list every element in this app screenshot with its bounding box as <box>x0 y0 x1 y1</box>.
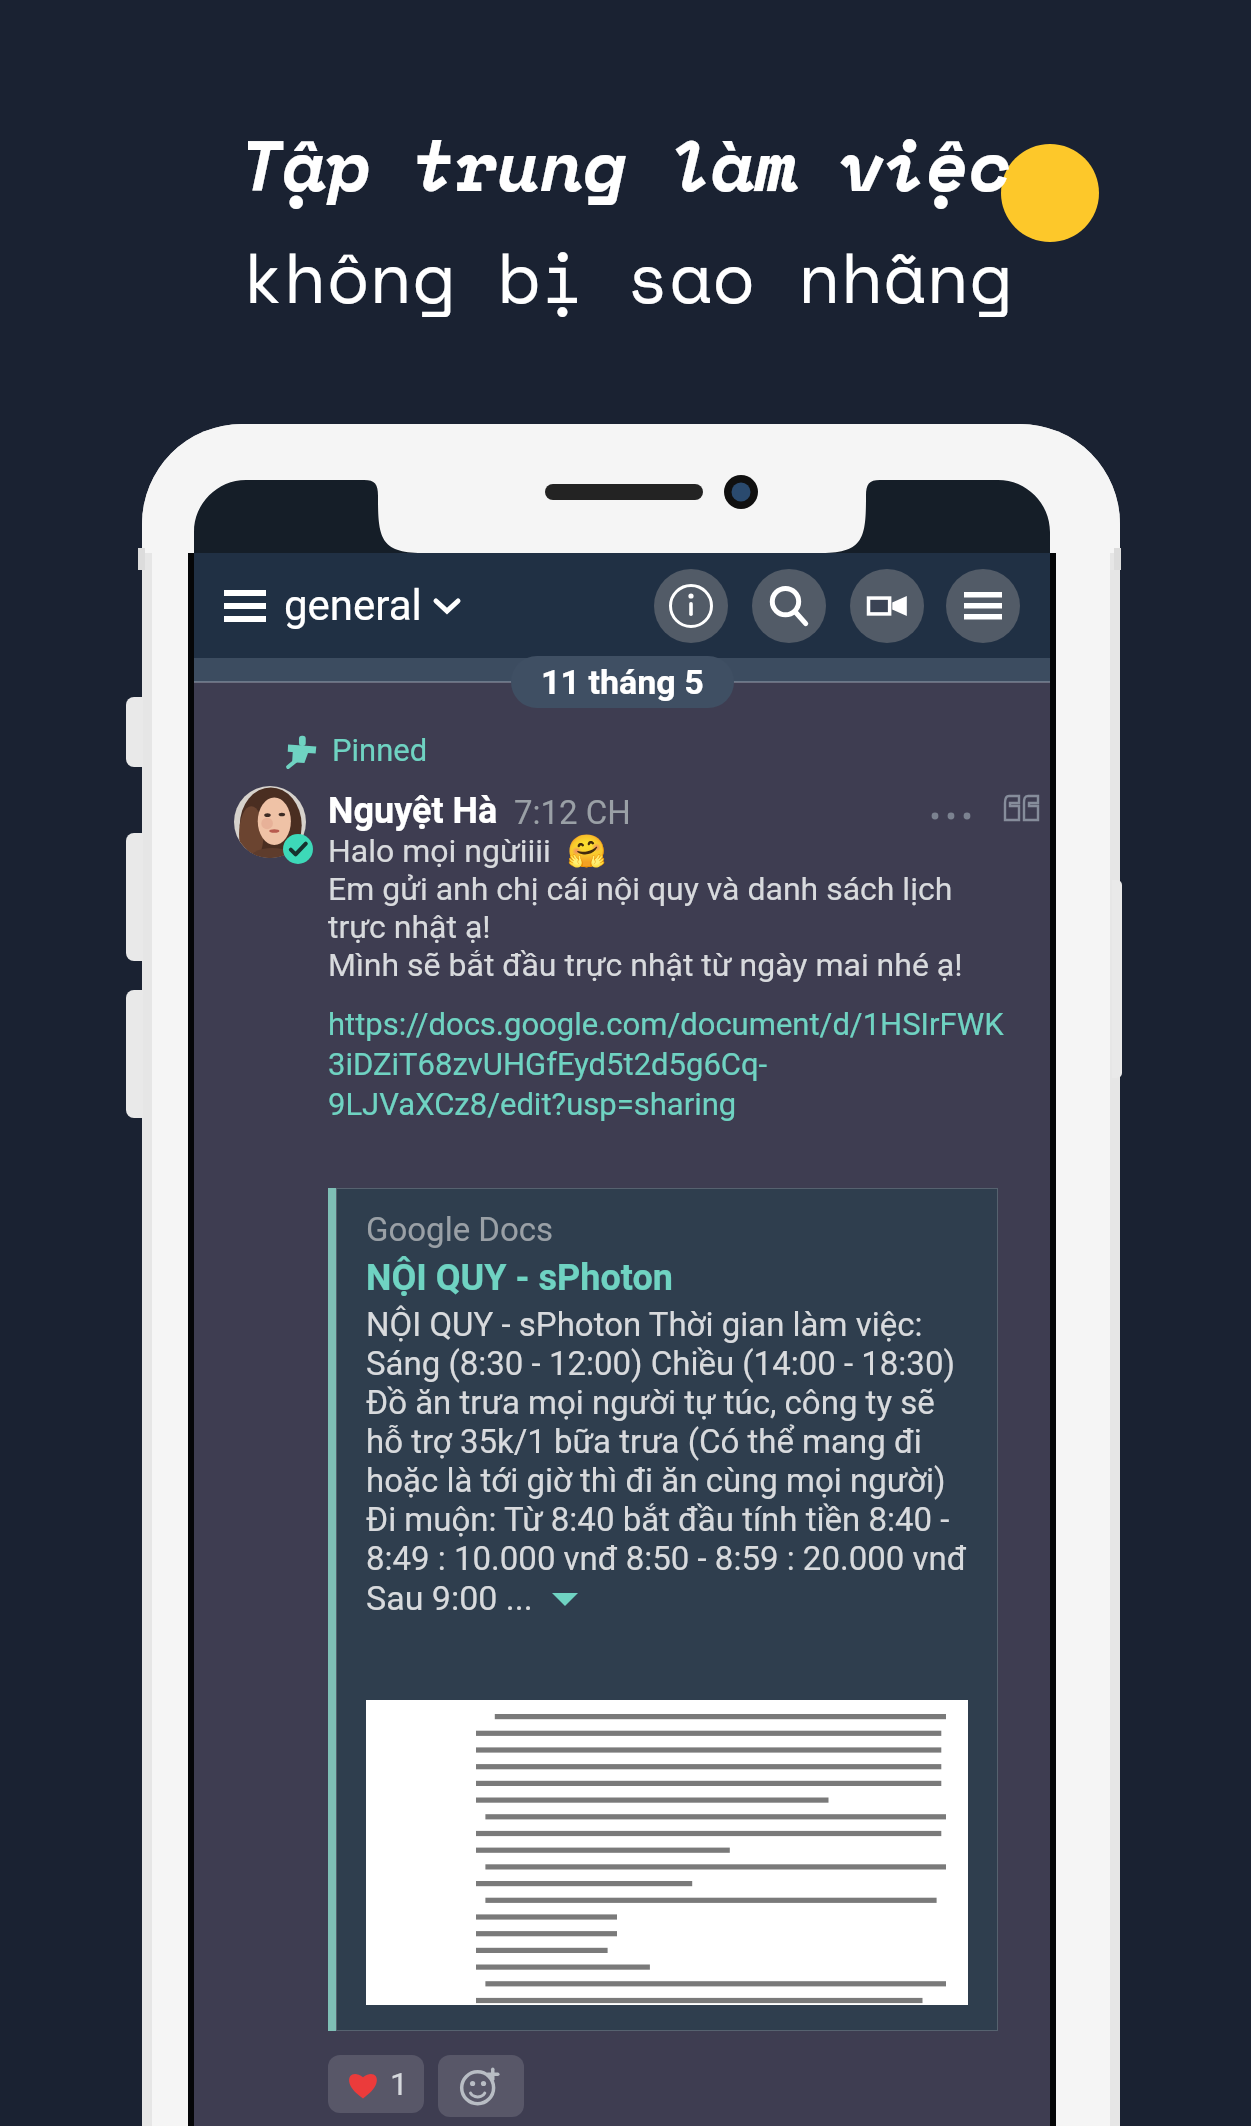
staticText: Tập trung làm việc <box>241 113 1013 217</box>
staticText: trực nhật ạ! <box>328 908 491 946</box>
staticText: Google Docs <box>366 1210 554 1249</box>
staticText: general <box>284 581 422 630</box>
button[interactable]: https://docs.google.com/document/d/1HSIr… <box>328 1006 1004 1042</box>
button[interactable]: 9LJVaXCz8/edit?usp=sharing <box>328 1086 737 1122</box>
button[interactable]: Add reaction <box>438 2055 524 2117</box>
staticText: NỘI QUY - sPhoton Thời gian làm việc: <box>366 1305 923 1344</box>
staticText: 1 <box>390 2065 408 2103</box>
button[interactable]: Quote message <box>1000 786 1046 832</box>
staticText: Halo mọi ngừiiii 🤗 <box>328 832 607 870</box>
button[interactable]: Channel info <box>654 569 728 643</box>
staticText: 8:49 : 10.000 vnđ 8:50 - 8:59 : 20.000 v… <box>366 1539 967 1578</box>
staticText: không bị sao nhãng <box>241 225 1013 329</box>
staticText: NỘI QUY - sPhoton <box>366 1257 673 1299</box>
staticText: Sáng (8:30 - 12:00) Chiều (14:00 - 18:30… <box>366 1344 955 1383</box>
button[interactable]: More actions <box>926 800 976 832</box>
button[interactable]: Google Docs <box>328 1188 998 2031</box>
button[interactable]: general <box>284 581 460 630</box>
staticText: Em gửi anh chị cái nội quy và danh sách … <box>328 870 953 908</box>
staticText: Pinned <box>332 732 428 768</box>
staticText: hỗ trợ 35k/1 bữa trưa (Có thể mang đi <box>366 1422 922 1461</box>
staticText: Đồ ăn trưa mọi người tự túc, công ty sẽ <box>366 1383 935 1422</box>
staticText: Mình sẽ bắt đầu trực nhật từ ngày mai nh… <box>328 946 963 984</box>
staticText: Sau 9:00 ... <box>366 1578 542 1618</box>
staticText: 7:12 CH <box>514 793 631 832</box>
staticText: hoặc là tới giờ thì đi ăn cùng mọi người… <box>366 1461 946 1500</box>
button[interactable]: 1 <box>328 2055 424 2113</box>
button[interactable]: Search <box>752 569 826 643</box>
button[interactable]: 11 tháng 5 <box>511 656 734 708</box>
button[interactable]: Start video call <box>850 569 924 643</box>
staticText: Đi muộn: Từ 8:40 bắt đầu tính tiền 8:40 … <box>366 1500 950 1539</box>
button[interactable]: More options <box>946 569 1020 643</box>
button[interactable]: Open navigation menu <box>214 575 276 637</box>
button[interactable]: Pinned <box>284 732 428 768</box>
staticText: Nguyệt Hà <box>328 790 498 832</box>
button[interactable]: 3iDZiT68zvUHGfEyd5t2d5g6Cq- <box>328 1046 768 1082</box>
staticText: 11 tháng 5 <box>541 662 704 702</box>
